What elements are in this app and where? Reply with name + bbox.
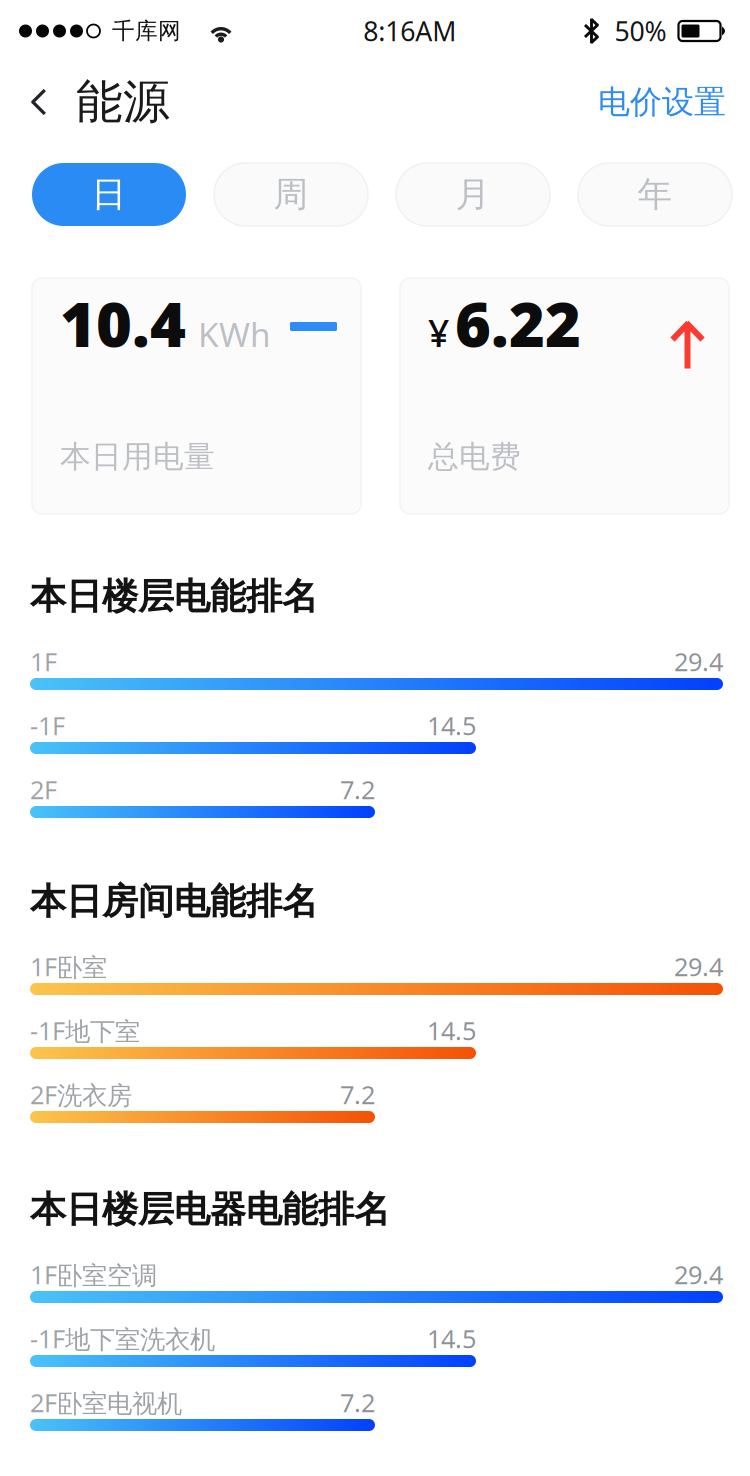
button[interactable]: 周: [214, 163, 368, 226]
staticText: 14.5: [427, 709, 476, 742]
staticText: 10.4: [60, 283, 186, 364]
staticText: ¥: [428, 308, 449, 357]
staticText: 7.2: [340, 1386, 375, 1419]
staticText: 29.4: [674, 950, 723, 983]
button[interactable]: 月: [396, 163, 550, 226]
staticText: 7.2: [340, 773, 375, 806]
staticText: -1F: [30, 709, 65, 742]
staticText: -1F地下室: [30, 1014, 140, 1047]
staticText: 千库网: [112, 17, 181, 45]
staticText: 2F洗衣房: [30, 1078, 132, 1111]
button[interactable]: 日: [32, 163, 186, 226]
staticText: 1F卧室空调: [30, 1258, 157, 1291]
staticText: 总电费: [428, 438, 521, 476]
staticText: 1F: [30, 645, 57, 678]
staticText: 29.4: [674, 1258, 723, 1291]
staticText: 本日房间电能排名: [30, 879, 318, 924]
staticText: 日: [91, 173, 126, 216]
staticText: 能源: [76, 73, 170, 131]
staticText: 50%: [614, 13, 666, 49]
staticText: KWh: [198, 312, 271, 356]
staticText: 29.4: [674, 645, 723, 678]
staticText: 8:16AM: [363, 13, 456, 49]
staticText: 7.2: [340, 1078, 375, 1111]
button[interactable]: 电价设置: [598, 66, 750, 138]
staticText: 本日楼层电器电能排名: [30, 1187, 390, 1232]
staticText: 本日用电量: [60, 438, 215, 476]
staticText: 电价设置: [598, 82, 726, 122]
staticText: 周: [273, 173, 308, 216]
staticText: 2F卧室电视机: [30, 1386, 182, 1419]
staticText: 14.5: [427, 1322, 476, 1355]
staticText: 14.5: [427, 1014, 476, 1047]
staticText: 本日楼层电能排名: [30, 574, 318, 619]
staticText: 1F卧室: [30, 950, 107, 983]
button[interactable]: 年: [578, 163, 732, 226]
staticText: 年: [637, 173, 672, 216]
button[interactable]: 返回 能源: [0, 63, 170, 141]
staticText: 6.22: [455, 283, 581, 364]
staticText: 2F: [30, 773, 57, 806]
staticText: -1F地下室洗衣机: [30, 1322, 215, 1355]
staticText: 月: [455, 173, 490, 216]
